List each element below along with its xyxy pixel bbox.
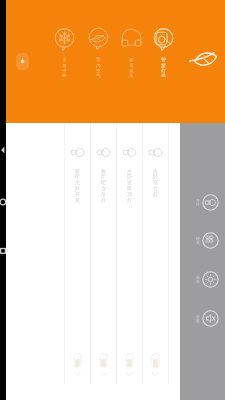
staticText: 客 厅 主 灯 开 关 [75,168,80,204]
staticText: 开 灯 [196,198,200,207]
staticText: 次 卧 室 台 灯 [153,168,158,198]
button[interactable]: 全 屋 冷 暖 [50,28,78,82]
staticText: 智 慧 灯 光 [161,57,166,78]
staticText: 模 式 [196,236,200,245]
button[interactable]: 智 慧 灯 光 [149,28,177,82]
button[interactable]: 室 内 空 气 [84,28,112,82]
button[interactable]: 客 厅 主 灯 开 关 [64,123,90,384]
staticText: 室 内 空 气 [96,57,101,78]
staticText: 主 卧 室 吸 顶 灯 [127,168,132,204]
button[interactable]: 次 卧 室 台 灯 [142,123,168,384]
button[interactable]: 餐 厅 吧 台 吊 灯 [90,123,116,384]
staticText: 亮 度 [196,275,200,284]
staticText: 餐 厅 吧 台 吊 灯 [101,168,106,204]
button[interactable]: 亮 度 [191,268,219,290]
button[interactable]: Home [16,53,29,70]
button[interactable]: 模 式 [191,229,219,251]
button[interactable]: Brand logo [188,44,220,72]
staticText: 全 屋 冷 暖 [62,57,67,78]
staticText: 音 量 [196,314,200,323]
button[interactable]: 开 灯 [191,191,219,213]
button[interactable]: 影 音 娱 乐 [117,28,145,82]
button[interactable]: 音 量 [191,307,219,329]
button[interactable]: 主 卧 室 吸 顶 灯 [116,123,142,384]
staticText: 影 音 娱 乐 [129,57,134,78]
